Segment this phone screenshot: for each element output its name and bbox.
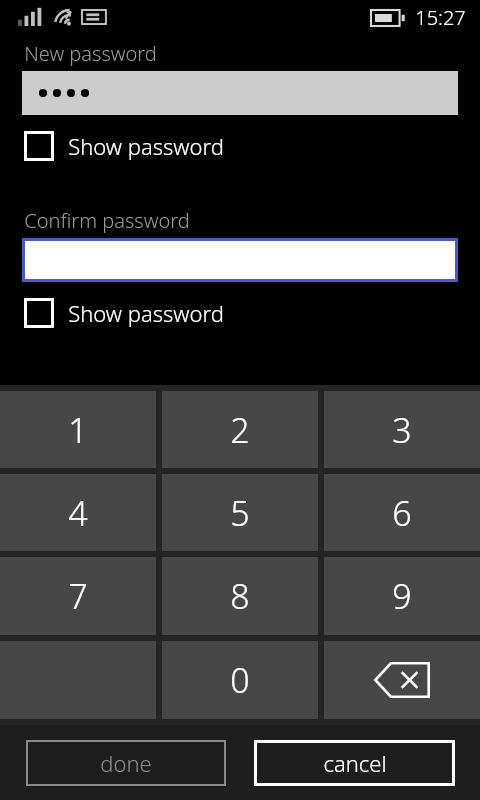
button[interactable]: 5 [162, 474, 318, 551]
staticText: New password [24, 40, 157, 67]
button[interactable]: 0 [162, 641, 318, 719]
button[interactable]: Show password [22, 296, 224, 330]
staticText: 2 [230, 407, 250, 453]
staticText: cancel [323, 748, 387, 778]
button[interactable]: 1 [0, 391, 156, 468]
button[interactable]: 6 [324, 474, 480, 551]
button[interactable]: done [26, 740, 226, 786]
button[interactable] [22, 238, 458, 282]
staticText: 0 [230, 657, 250, 703]
staticText: 15:27 [415, 4, 466, 31]
button[interactable]: 7 [0, 557, 156, 635]
button[interactable]: 2 [162, 391, 318, 468]
staticText: done [100, 748, 152, 778]
staticText: 1 [68, 407, 88, 453]
button[interactable] [22, 71, 458, 115]
button[interactable]: Show password [22, 129, 224, 163]
staticText: 7 [68, 573, 88, 619]
staticText: 3 [392, 407, 412, 453]
button[interactable]: cancel [254, 740, 455, 786]
staticText: 6 [392, 490, 412, 536]
staticText: 4 [68, 490, 88, 536]
staticText: 9 [392, 573, 412, 619]
staticText: 5 [230, 490, 250, 536]
button[interactable]: Backspace [324, 641, 480, 719]
button[interactable]: 4 [0, 474, 156, 551]
staticText: Show password [68, 298, 224, 328]
button[interactable]: 9 [324, 557, 480, 635]
button[interactable]: 8 [162, 557, 318, 635]
button[interactable]: 3 [324, 391, 480, 468]
staticText: Confirm password [24, 207, 190, 234]
staticText: 8 [230, 573, 250, 619]
staticText: Show password [68, 131, 224, 161]
